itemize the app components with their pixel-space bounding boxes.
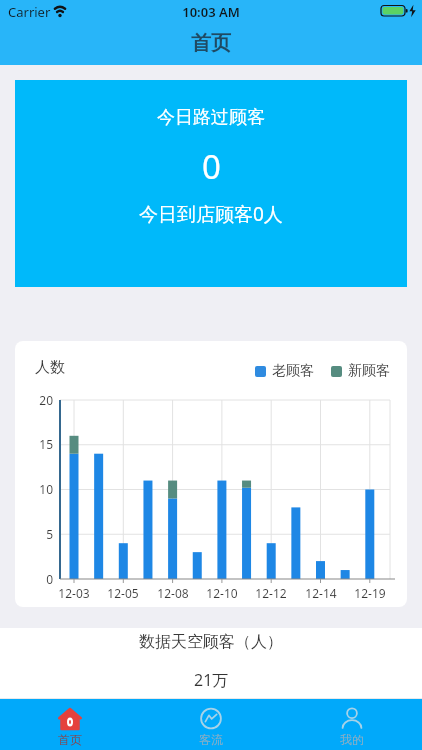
staticText: 0: [23, 571, 53, 587]
staticText: 数据天空顾客（人）: [139, 632, 283, 652]
staticText: 首页: [58, 732, 82, 747]
staticText: 我的: [340, 732, 364, 747]
button[interactable]: 客流: [140, 699, 281, 750]
staticText: 12-05: [101, 585, 145, 601]
staticText: 12-08: [151, 585, 195, 601]
staticText: 12-12: [249, 585, 293, 601]
staticText: 20: [23, 392, 53, 408]
staticText: 客流: [199, 732, 223, 747]
staticText: 0: [202, 144, 221, 189]
staticText: 12-03: [52, 585, 96, 601]
button[interactable]: 我的: [281, 699, 422, 750]
staticText: 5: [23, 526, 53, 542]
staticText: 人数: [35, 358, 65, 377]
button[interactable]: 今日路过顾客: [15, 80, 407, 287]
staticText: 12-19: [348, 585, 392, 601]
staticText: 15: [23, 436, 53, 452]
staticText: 10: [23, 481, 53, 497]
staticText: 今日路过顾客: [157, 106, 265, 129]
staticText: 12-10: [200, 585, 244, 601]
staticText: 新顾客: [348, 362, 390, 380]
staticText: 10:03 AM: [0, 3, 422, 21]
staticText: Carrier: [8, 3, 51, 21]
staticText: 12-14: [299, 585, 343, 601]
staticText: 首页: [191, 31, 231, 56]
button[interactable]: 首页: [0, 699, 140, 750]
staticText: 今日到店顾客0人: [139, 201, 283, 227]
staticText: 老顾客: [272, 362, 314, 380]
staticText: 21万: [194, 669, 229, 691]
